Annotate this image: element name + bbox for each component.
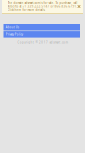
staticText: Privacy Policy xyxy=(6,33,23,36)
staticText: About Us xyxy=(6,25,19,29)
button[interactable]: About Us xyxy=(3,24,80,30)
staticText: The domain adsmart.com is for sale. To p… xyxy=(7,1,77,12)
staticText: Copyright © 2017 adsmart.com xyxy=(17,41,68,44)
button[interactable]: Dismiss banner xyxy=(76,4,81,9)
button[interactable]: Privacy Policy xyxy=(3,31,80,38)
